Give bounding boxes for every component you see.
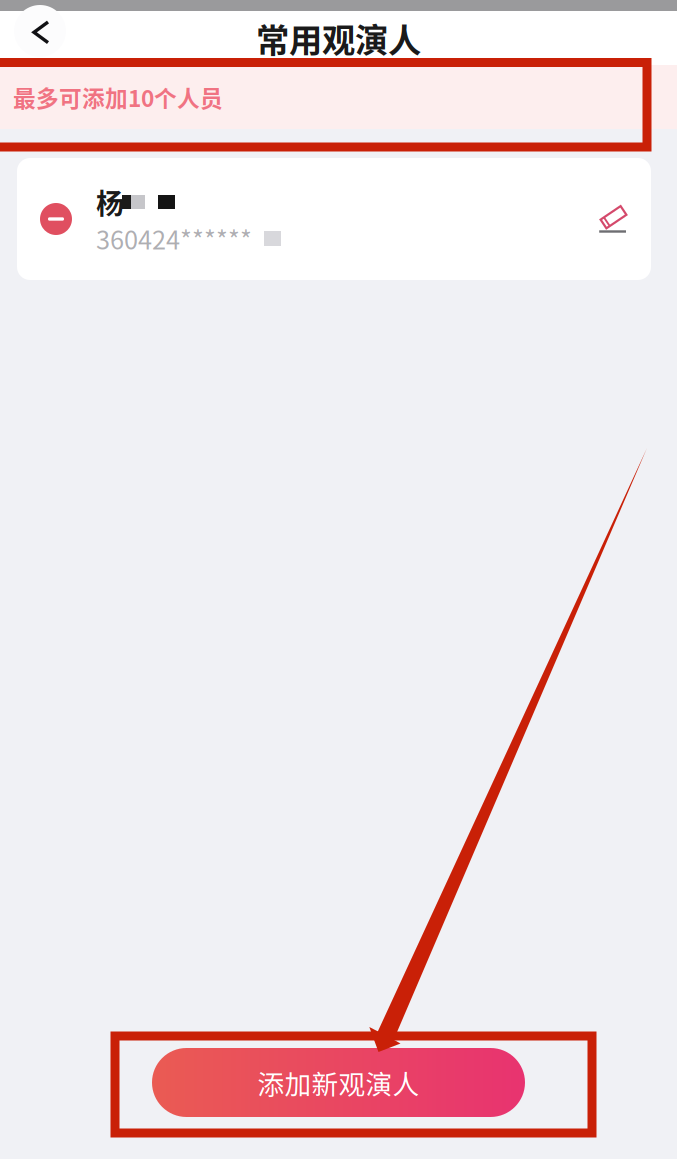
staticText: 最多可添加10个人员 [13, 81, 223, 113]
staticText: 常用观演人 [256, 14, 421, 62]
staticText: 360424****** [96, 220, 252, 257]
button[interactable]: 添加新观演人 [152, 1048, 525, 1117]
button[interactable]: Back [0, 11, 80, 65]
staticText: 杨 [96, 182, 124, 222]
button[interactable]: Remove attendee [40, 196, 72, 242]
staticText: 添加新观演人 [257, 1063, 419, 1102]
button[interactable]: Edit attendee [599, 205, 628, 233]
